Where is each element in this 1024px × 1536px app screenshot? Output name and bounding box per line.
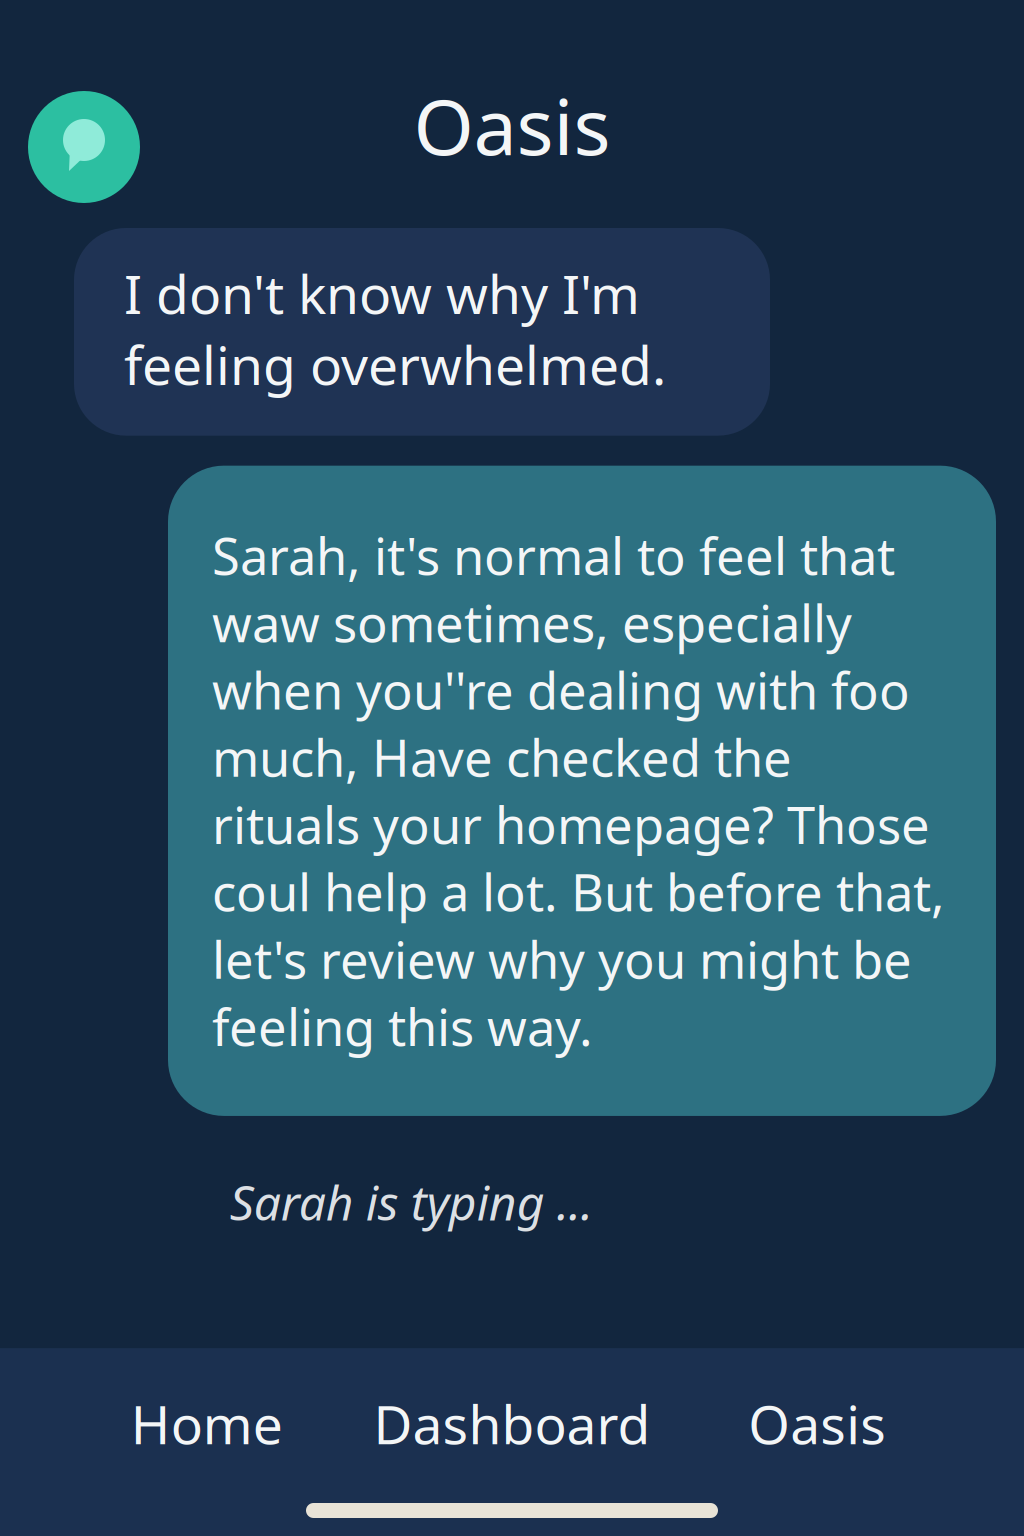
button[interactable]: Conversations: [22, 85, 146, 209]
button[interactable]: Home: [54, 1362, 359, 1485]
staticText: Sarah is typing ...: [230, 1170, 593, 1234]
button[interactable]: Oasis: [665, 1362, 970, 1485]
staticText: Oasis: [748, 1388, 886, 1459]
staticText: Oasis: [413, 74, 610, 176]
staticText: Sarah, it's normal to feel that waw some…: [212, 522, 945, 1060]
staticText: Dashboard: [373, 1388, 650, 1459]
staticText: I don't know why I'm feeling overwhelmed…: [124, 258, 666, 400]
staticText: Home: [131, 1388, 283, 1459]
button[interactable]: Dashboard: [359, 1362, 665, 1485]
